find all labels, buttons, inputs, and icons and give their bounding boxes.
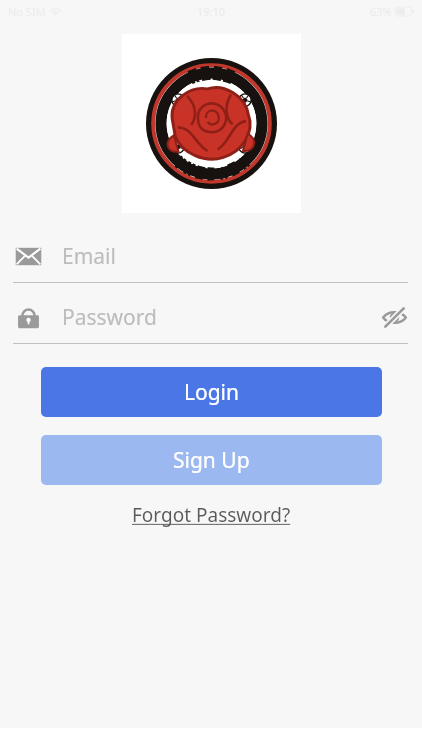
other: Email — [14, 242, 43, 271]
staticText: Email — [62, 242, 116, 271]
staticText: 63% — [370, 4, 392, 19]
other: Password — [14, 303, 43, 332]
button[interactable]: Login — [41, 367, 382, 417]
staticText: Password — [62, 303, 157, 332]
button[interactable]: Sign Up — [41, 435, 382, 485]
staticText: Login — [184, 378, 240, 407]
staticText: Sign Up — [173, 446, 250, 475]
staticText: 19:10 — [197, 4, 226, 19]
button[interactable]: Forgot Password? — [128, 500, 295, 530]
button[interactable]: Email — [0, 231, 422, 283]
button[interactable]: Password — [0, 292, 422, 344]
button[interactable]: Show password — [381, 304, 408, 331]
staticText: No SIM — [8, 4, 46, 19]
